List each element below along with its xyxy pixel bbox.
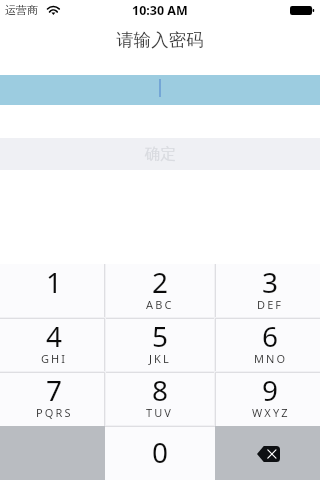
staticText: GHI [41,351,68,366]
staticText: MNO [254,351,288,366]
button[interactable]: 9 [215,372,320,426]
button[interactable]: 1 [0,264,105,318]
staticText: ABC [146,297,174,312]
staticText: 运营商 [5,3,38,17]
staticText: DEF [257,297,284,312]
button[interactable]: 0 [105,426,215,480]
staticText: 2 [152,263,169,301]
staticText: TUV [146,405,174,420]
staticText: WXYZ [252,405,290,420]
button[interactable]: 3 [215,264,320,318]
staticText: JKL [149,351,171,366]
button[interactable]: 2 [105,264,215,318]
staticText: 确定 [145,144,176,164]
button[interactable]: 7 [0,372,105,426]
button[interactable]: 6 [215,318,320,372]
staticText: 3 [262,263,279,301]
button[interactable]: Delete [215,426,320,480]
staticText: 6 [262,317,279,355]
staticText: 5 [152,317,169,355]
button[interactable]: 4 [0,318,105,372]
button[interactable]: 5 [105,318,215,372]
staticText: 请输入密码 [116,29,204,51]
staticText: 1 [46,263,63,301]
staticText: 0 [152,433,169,471]
staticText: 4 [46,317,63,355]
staticText: 9 [262,371,279,409]
button[interactable]: 8 [105,372,215,426]
staticText: 8 [152,371,169,409]
staticText: 10:30 AM [132,2,188,19]
staticText: PQRS [36,405,73,420]
staticText: 7 [46,371,63,409]
